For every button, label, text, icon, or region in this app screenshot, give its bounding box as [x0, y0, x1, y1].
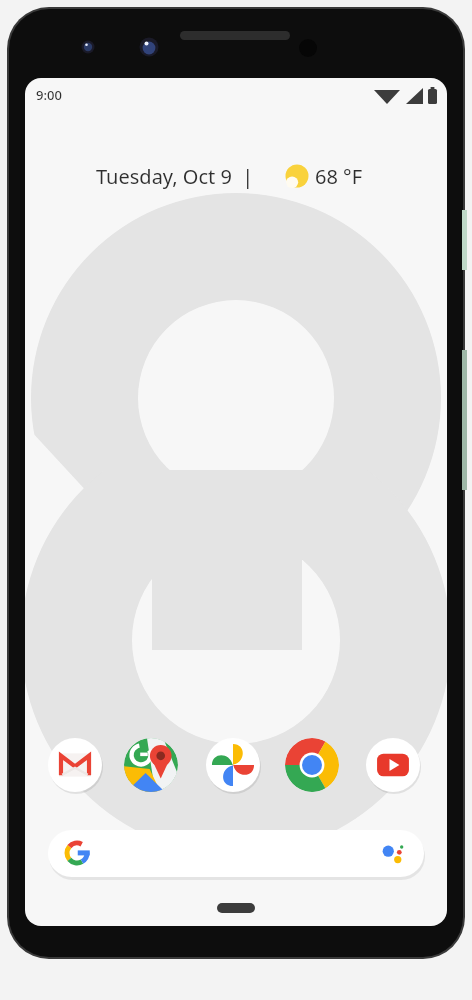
button[interactable]: Photos: [206, 738, 260, 792]
button[interactable]: Maps: [124, 738, 178, 792]
staticText: Tuesday, Oct 9 |: [96, 163, 254, 190]
staticText: 9:00: [36, 86, 62, 104]
button[interactable]: Tuesday, Oct 9 |: [86, 158, 386, 192]
button[interactable]: Gmail: [48, 738, 102, 792]
button[interactable]: Chrome: [285, 738, 339, 792]
button[interactable]: Search with Google: [48, 830, 424, 877]
button[interactable]: Home: [217, 903, 255, 913]
staticText: 68 °F: [315, 163, 363, 190]
button[interactable]: YouTube: [366, 738, 420, 792]
button[interactable]: Google Assistant: [378, 840, 408, 870]
